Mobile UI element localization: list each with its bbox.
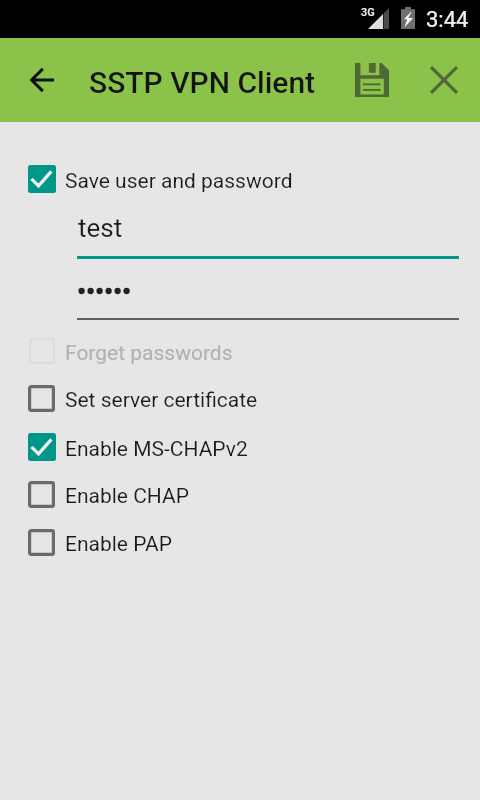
button[interactable]: Password [77,268,459,320]
staticText: Enable CHAP [65,484,189,509]
button[interactable]: Close [416,38,472,122]
button[interactable]: Set server certificate [28,385,258,412]
staticText: 3G [361,6,375,19]
staticText: Set server certificate [65,388,258,413]
button[interactable]: Forget passwords [29,338,233,364]
button[interactable]: Enable MS-CHAPv2 [28,433,248,461]
staticText: 3:44 [426,7,469,33]
button[interactable]: Enable CHAP [28,481,189,508]
button[interactable]: Enable PAP [28,529,172,556]
button[interactable]: Save [344,38,400,122]
staticText: Save user and password [65,169,293,194]
staticText: test [78,213,123,243]
button[interactable]: test [77,205,459,259]
button[interactable]: Save user and password [28,165,293,193]
staticText: Enable PAP [65,532,172,557]
staticText: SSTP VPN Client [89,65,316,122]
button[interactable]: Navigate up [18,38,66,122]
staticText: Forget passwords [65,341,233,366]
staticText: Enable MS-CHAPv2 [65,437,248,462]
